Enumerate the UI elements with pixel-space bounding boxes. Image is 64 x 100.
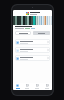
button[interactable]: Banner image [13,16,52,25]
button[interactable] [15,47,50,53]
button[interactable] [15,39,50,45]
button[interactable]: App logo [26,12,29,15]
button[interactable] [15,55,50,61]
button[interactable]: Home [13,83,22,90]
button[interactable]: Profile [42,83,52,90]
button[interactable] [15,31,31,35]
button[interactable] [33,31,50,35]
button[interactable]: Explore [22,83,32,90]
button[interactable]: Favorites [32,83,42,90]
